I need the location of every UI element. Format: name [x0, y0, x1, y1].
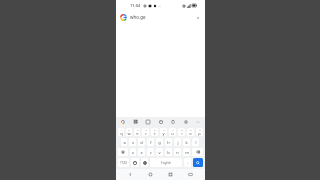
staticText: l [195, 140, 197, 145]
staticText: o [189, 131, 192, 136]
button[interactable]: c [147, 148, 154, 156]
button[interactable]: 5 [151, 128, 158, 136]
button[interactable]: Clipboard [170, 119, 176, 125]
button[interactable]: b [165, 148, 172, 156]
other: Google [120, 14, 127, 21]
staticText: y [162, 131, 165, 136]
staticText: 7 [172, 128, 174, 131]
button[interactable]: d [138, 138, 145, 146]
button[interactable]: s [129, 138, 136, 146]
staticText: p [198, 131, 201, 136]
staticText: 1 [121, 128, 123, 131]
staticText: t [154, 131, 156, 136]
button[interactable]: Settings [183, 119, 189, 125]
button[interactable]: Google search [120, 119, 126, 125]
staticText: n [176, 150, 179, 155]
staticText: 8 [181, 128, 183, 131]
button[interactable]: 4 [142, 128, 149, 136]
staticText: ?123 [120, 161, 127, 165]
staticText: q [120, 131, 123, 136]
button[interactable]: 3 [134, 128, 140, 136]
staticText: e [136, 131, 139, 136]
staticText: 11:04 [130, 3, 141, 8]
staticText: i [181, 131, 183, 136]
staticText: r [145, 131, 147, 136]
button[interactable]: 6 [160, 128, 167, 136]
staticText: x [140, 150, 143, 155]
button[interactable]: m [183, 148, 190, 156]
button[interactable]: More [195, 119, 201, 125]
button[interactable]: Stickers [158, 119, 164, 125]
button[interactable]: k [183, 138, 190, 146]
button[interactable]: 1 [118, 128, 124, 136]
staticText: 3 [137, 128, 139, 131]
button[interactable]: Emoji [131, 158, 139, 167]
button[interactable]: g [156, 138, 163, 146]
staticText: m [185, 150, 189, 155]
staticText: 5 [154, 128, 156, 131]
button[interactable]: Search [193, 158, 203, 167]
button[interactable]: English [150, 158, 182, 167]
staticText: h [167, 140, 170, 145]
button[interactable]: a [121, 138, 127, 146]
staticText: s [132, 140, 134, 145]
button[interactable]: Keyboard [185, 169, 196, 180]
button[interactable]: Themes [133, 119, 139, 125]
button[interactable]: 2 [126, 128, 132, 136]
button[interactable]: z [130, 148, 136, 156]
button[interactable]: Back [125, 169, 136, 180]
staticText: f [150, 140, 152, 145]
button[interactable]: x [138, 148, 145, 156]
staticText: v [158, 150, 161, 155]
button[interactable]: 8 [178, 128, 185, 136]
button[interactable]: Google [120, 12, 201, 22]
button[interactable]: Language [141, 158, 148, 167]
button[interactable]: Backspace [192, 148, 203, 156]
staticText: j [177, 140, 179, 145]
button[interactable]: Clear [194, 14, 201, 21]
staticText: 0 [199, 128, 201, 131]
staticText: d [140, 140, 143, 145]
staticText: c [150, 150, 152, 155]
button[interactable]: Shift [118, 148, 128, 156]
staticText: English [161, 161, 172, 165]
staticText: 4 [145, 128, 147, 131]
button[interactable]: j [174, 138, 181, 146]
staticText: 2 [128, 128, 130, 131]
staticText: b [167, 150, 170, 155]
button[interactable]: f [147, 138, 154, 146]
staticText: w [127, 131, 131, 136]
staticText: who.ge [130, 14, 146, 20]
staticText: z [132, 150, 134, 155]
button[interactable]: 7 [169, 128, 176, 136]
button[interactable]: Recents [165, 169, 176, 180]
button[interactable]: 0 [196, 128, 203, 136]
button[interactable]: v [156, 148, 163, 156]
staticText: … [158, 3, 162, 8]
button[interactable]: Period [184, 158, 191, 167]
staticText: k [185, 140, 188, 145]
button[interactable]: 9 [187, 128, 194, 136]
staticText: 9 [190, 128, 192, 131]
button[interactable]: h [165, 138, 172, 146]
staticText: u [171, 131, 174, 136]
staticText: a [123, 140, 126, 145]
staticText: g [158, 140, 161, 145]
button[interactable]: ?123 [118, 158, 129, 167]
button[interactable]: l [192, 138, 199, 146]
staticText: 6 [163, 128, 165, 131]
button[interactable]: Home [145, 169, 156, 180]
button[interactable]: n [174, 148, 181, 156]
button[interactable]: GIF [145, 119, 151, 125]
